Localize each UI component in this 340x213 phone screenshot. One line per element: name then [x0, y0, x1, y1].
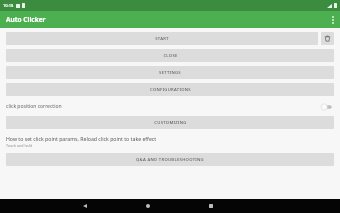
staticText: Q&A AND TROUBLESHOOTING — [136, 157, 204, 163]
button[interactable]: Back — [74, 199, 96, 213]
staticText: CUSTOMIZING — [154, 120, 187, 126]
button[interactable]: Q&A AND TROUBLESHOOTING — [6, 153, 334, 166]
button[interactable]: CUSTOMIZING — [6, 116, 334, 129]
staticText: click position correction — [6, 103, 320, 110]
staticText: CONFIGURATIONS — [150, 87, 191, 93]
button[interactable]: SETTINGS — [6, 66, 334, 79]
button[interactable]: CLOSE — [6, 49, 334, 62]
button[interactable]: More options — [326, 13, 340, 27]
button[interactable]: click position correction — [6, 100, 334, 113]
staticText: How to set click point params, Reload cl… — [6, 135, 157, 142]
staticText: Touch and hold — [6, 143, 32, 148]
button[interactable]: Delete — [321, 32, 334, 45]
staticText: START — [155, 36, 169, 42]
staticText: 10:18 — [3, 3, 14, 8]
button[interactable]: Home — [137, 199, 159, 213]
button[interactable]: START — [6, 32, 318, 45]
button[interactable]: How to set click point params, Reload cl… — [6, 135, 334, 148]
staticText: CLOSE — [163, 53, 178, 59]
staticText: SETTINGS — [159, 70, 181, 76]
button[interactable]: click position correction toggle — [320, 102, 334, 112]
button[interactable]: CONFIGURATIONS — [6, 83, 334, 96]
staticText: Auto Clicker — [6, 15, 46, 24]
button[interactable]: Recent apps — [200, 199, 222, 213]
